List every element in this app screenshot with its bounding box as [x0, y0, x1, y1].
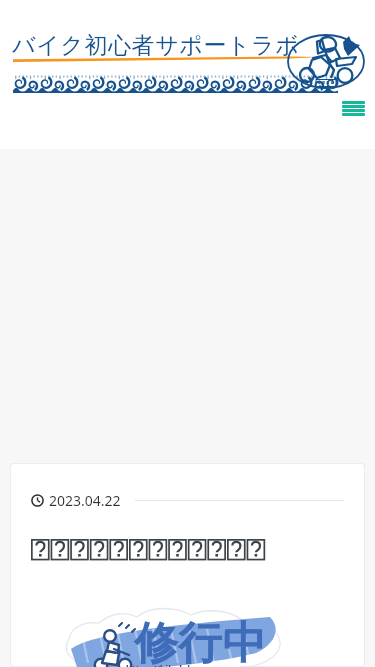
staticText: 修行中 [134, 616, 266, 667]
staticText: https://bikelabo.com [126, 662, 221, 667]
button[interactable]: 2023.04.22 [11, 464, 364, 666]
button[interactable]: Open navigation menu [334, 93, 373, 124]
staticText: バイク初心者サポートラボ [12, 31, 300, 60]
staticText: 2023.04.22 [49, 491, 121, 510]
